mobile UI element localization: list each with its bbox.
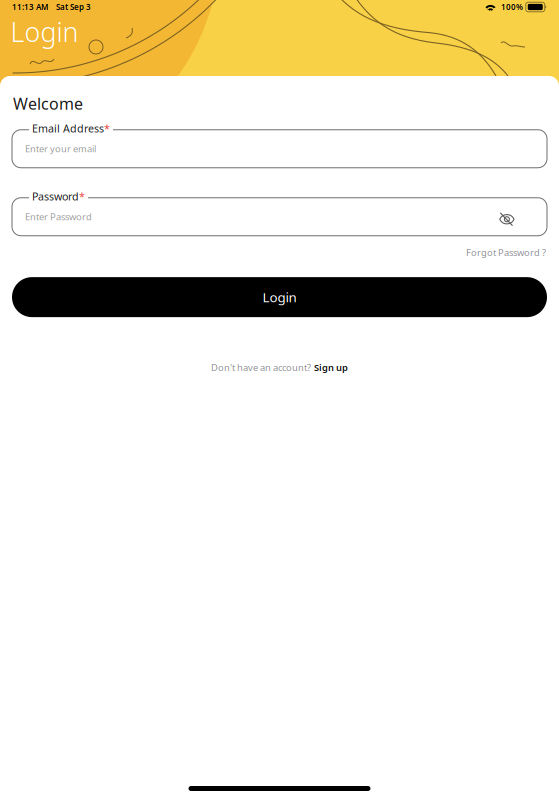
- staticText: Password: [32, 189, 79, 203]
- staticText: *: [104, 121, 110, 135]
- staticText: 100%: [501, 2, 523, 12]
- staticText: Login: [262, 288, 296, 306]
- staticText: Don't have an account?: [211, 361, 311, 373]
- staticText: Sign up: [314, 361, 348, 373]
- button[interactable]: Show password: [499, 207, 534, 226]
- staticText: *: [79, 189, 85, 203]
- staticText: 11:13 AM: [12, 2, 48, 12]
- button[interactable]: Login: [12, 277, 547, 317]
- staticText: Forgot Password ?: [466, 246, 546, 259]
- button[interactable]: Sign up: [314, 361, 348, 373]
- staticText: Email Address: [32, 121, 104, 135]
- staticText: Enter Password: [25, 211, 92, 223]
- staticText: Enter your email: [25, 143, 96, 155]
- staticText: Welcome: [13, 93, 83, 114]
- button[interactable]: Forgot Password ?: [466, 246, 546, 259]
- staticText: Sat Sep 3: [56, 2, 91, 12]
- staticText: Login: [10, 14, 78, 49]
